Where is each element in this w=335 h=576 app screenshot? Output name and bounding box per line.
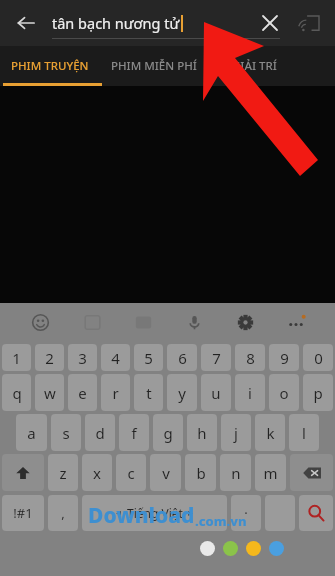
staticText: tân bạch nương tử: [52, 13, 180, 33]
button[interactable]: t: [134, 374, 163, 411]
staticText: 8: [246, 348, 255, 368]
staticText: a: [27, 423, 36, 443]
staticText: v: [162, 463, 170, 483]
button[interactable]: 4: [101, 344, 130, 371]
button[interactable]: e: [68, 374, 97, 411]
staticText: e: [78, 383, 87, 403]
staticText: f: [131, 423, 137, 443]
staticText: i: [248, 383, 252, 403]
button[interactable]: 5: [134, 344, 163, 371]
button[interactable]: Voice input: [182, 310, 206, 334]
button[interactable]: u: [201, 374, 231, 411]
staticText: PHIM MIỄN PHÍ: [111, 58, 197, 74]
staticText: j: [234, 423, 238, 443]
staticText: n: [231, 463, 241, 483]
button[interactable]: Back: [8, 5, 44, 41]
button[interactable]: z: [48, 454, 78, 491]
staticText: Tiếng Việt: [127, 505, 183, 521]
button[interactable]: 2: [35, 344, 64, 371]
button[interactable]: b: [185, 454, 216, 491]
button[interactable]: o: [269, 374, 299, 411]
button[interactable]: Stickers: [80, 310, 104, 334]
staticText: ,: [61, 504, 65, 522]
button[interactable]: y: [167, 374, 197, 411]
button[interactable]: Settings: [233, 310, 257, 334]
staticText: c: [127, 463, 135, 483]
button[interactable]: 3: [68, 344, 97, 371]
button[interactable]: Clear: [253, 6, 287, 40]
button[interactable]: PHIM MIỄN PHÍ: [99, 46, 209, 86]
staticText: h: [197, 423, 207, 443]
button[interactable]: 7: [201, 344, 231, 371]
staticText: d: [95, 423, 105, 443]
button[interactable]: a: [16, 414, 47, 451]
staticText: g: [163, 423, 173, 443]
staticText: ▸: [188, 507, 194, 519]
staticText: 6: [178, 348, 187, 368]
button[interactable]: GIẢI TRÍ: [209, 46, 299, 86]
button[interactable]: d: [85, 414, 115, 451]
button[interactable]: g: [153, 414, 183, 451]
button[interactable]: p: [303, 374, 333, 411]
button[interactable]: f: [119, 414, 149, 451]
staticText: GIẢI TRÍ: [232, 58, 277, 74]
button[interactable]: 9: [269, 344, 299, 371]
button[interactable]: More: [284, 310, 308, 334]
button[interactable]: 6: [167, 344, 197, 371]
staticText: z: [59, 463, 67, 483]
button[interactable]: Cast: [293, 6, 327, 40]
staticText: 5: [144, 348, 153, 368]
button[interactable]: 0: [303, 344, 333, 371]
staticText: 0: [314, 348, 323, 368]
button[interactable]: ,: [48, 495, 78, 531]
staticText: l: [302, 423, 306, 443]
button[interactable]: c: [116, 454, 146, 491]
staticText: Download: [88, 501, 195, 530]
button[interactable]: n: [220, 454, 251, 491]
staticText: r: [112, 383, 119, 403]
staticText: w: [44, 383, 56, 403]
button[interactable]: r: [101, 374, 130, 411]
button[interactable]: Search: [299, 495, 333, 531]
button[interactable]: x: [82, 454, 112, 491]
button[interactable]: 8: [235, 344, 265, 371]
button[interactable]: j: [221, 414, 251, 451]
button[interactable]: l: [289, 414, 319, 451]
staticText: y: [178, 383, 186, 403]
staticText: 4: [111, 348, 120, 368]
staticText: o: [279, 383, 289, 403]
button[interactable]: ·: [231, 495, 261, 531]
staticText: 3: [78, 348, 87, 368]
staticText: u: [211, 383, 221, 403]
staticText: m: [263, 463, 278, 483]
staticText: 7: [212, 348, 221, 368]
staticText: q: [12, 383, 22, 403]
button[interactable]: v: [150, 454, 181, 491]
button[interactable]: !#1: [2, 495, 44, 531]
staticText: ◂: [116, 507, 122, 519]
button[interactable]: m: [255, 454, 286, 491]
button[interactable]: h: [187, 414, 217, 451]
button[interactable]: w: [35, 374, 64, 411]
staticText: .com.vn: [195, 512, 247, 530]
staticText: k: [266, 423, 275, 443]
button[interactable]: i: [235, 374, 265, 411]
button[interactable]: q: [2, 374, 31, 411]
button[interactable]: Shift: [2, 454, 44, 491]
staticText: 2: [45, 348, 54, 368]
button[interactable]: PHIM TRUYỆN: [0, 46, 99, 86]
button[interactable]: k: [255, 414, 285, 451]
button[interactable]: GIF: [131, 310, 155, 334]
staticText: ·: [244, 504, 248, 522]
button[interactable]: Emoji: [28, 310, 52, 334]
staticText: 9: [280, 348, 289, 368]
button[interactable]: ◂: [82, 495, 227, 531]
button[interactable]: Backspace: [290, 454, 333, 491]
staticText: s: [62, 423, 70, 443]
staticText: x: [93, 463, 101, 483]
staticText: b: [196, 463, 206, 483]
staticText: 1: [12, 348, 21, 368]
button[interactable]: s: [51, 414, 81, 451]
button[interactable]: 1: [2, 344, 31, 371]
